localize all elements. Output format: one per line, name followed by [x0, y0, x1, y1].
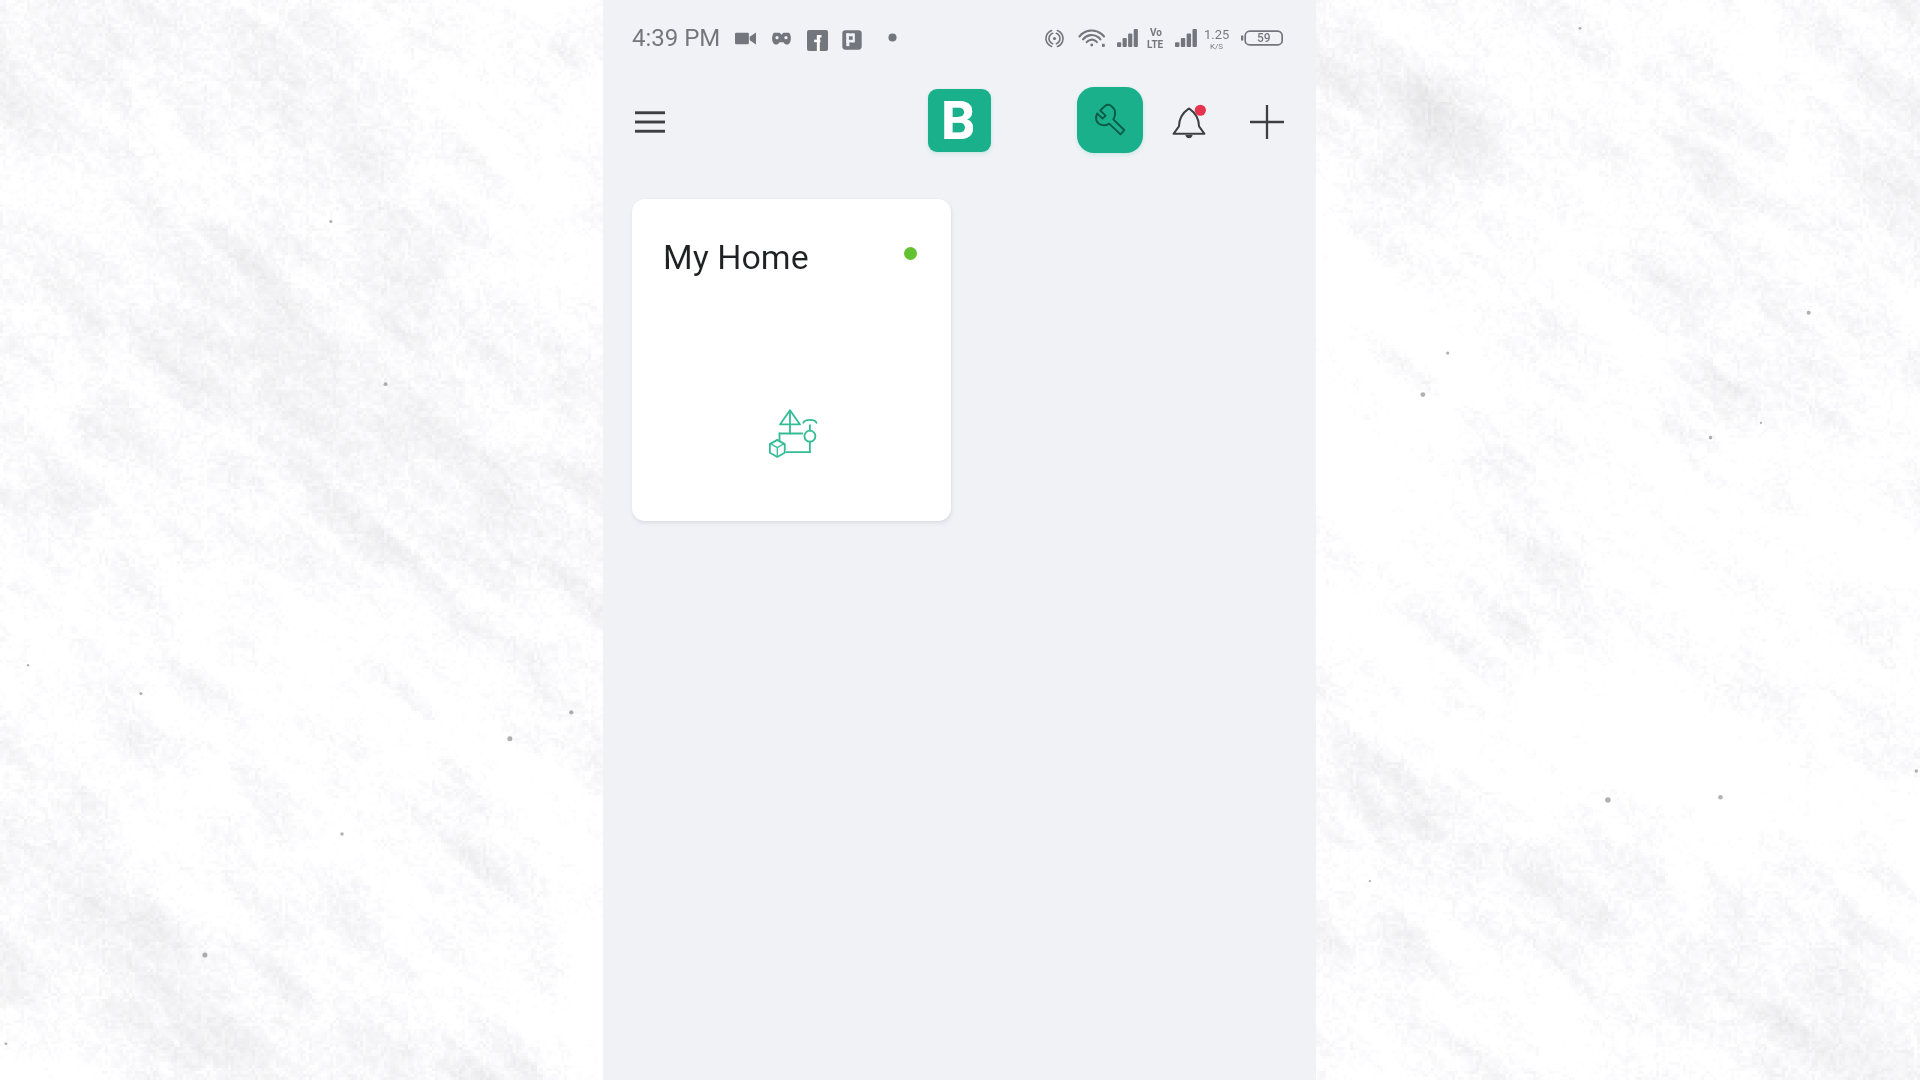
button[interactable]: Add [1243, 98, 1291, 146]
button[interactable]: Settings [1077, 87, 1143, 153]
staticText: 4:39 PM [632, 24, 721, 52]
staticText: 59 [1257, 31, 1271, 45]
staticText: 1.25 [1204, 27, 1230, 42]
button[interactable]: Notifications [1165, 99, 1213, 147]
staticText: K/S [1210, 42, 1224, 51]
button[interactable]: My Home [632, 199, 951, 521]
staticText: LTE [1147, 39, 1164, 51]
staticText: My Home [663, 237, 809, 277]
button[interactable]: Menu [627, 99, 673, 145]
button[interactable]: Blynk [928, 89, 991, 152]
staticText: Vo [1150, 27, 1162, 39]
staticText: B [941, 89, 976, 152]
